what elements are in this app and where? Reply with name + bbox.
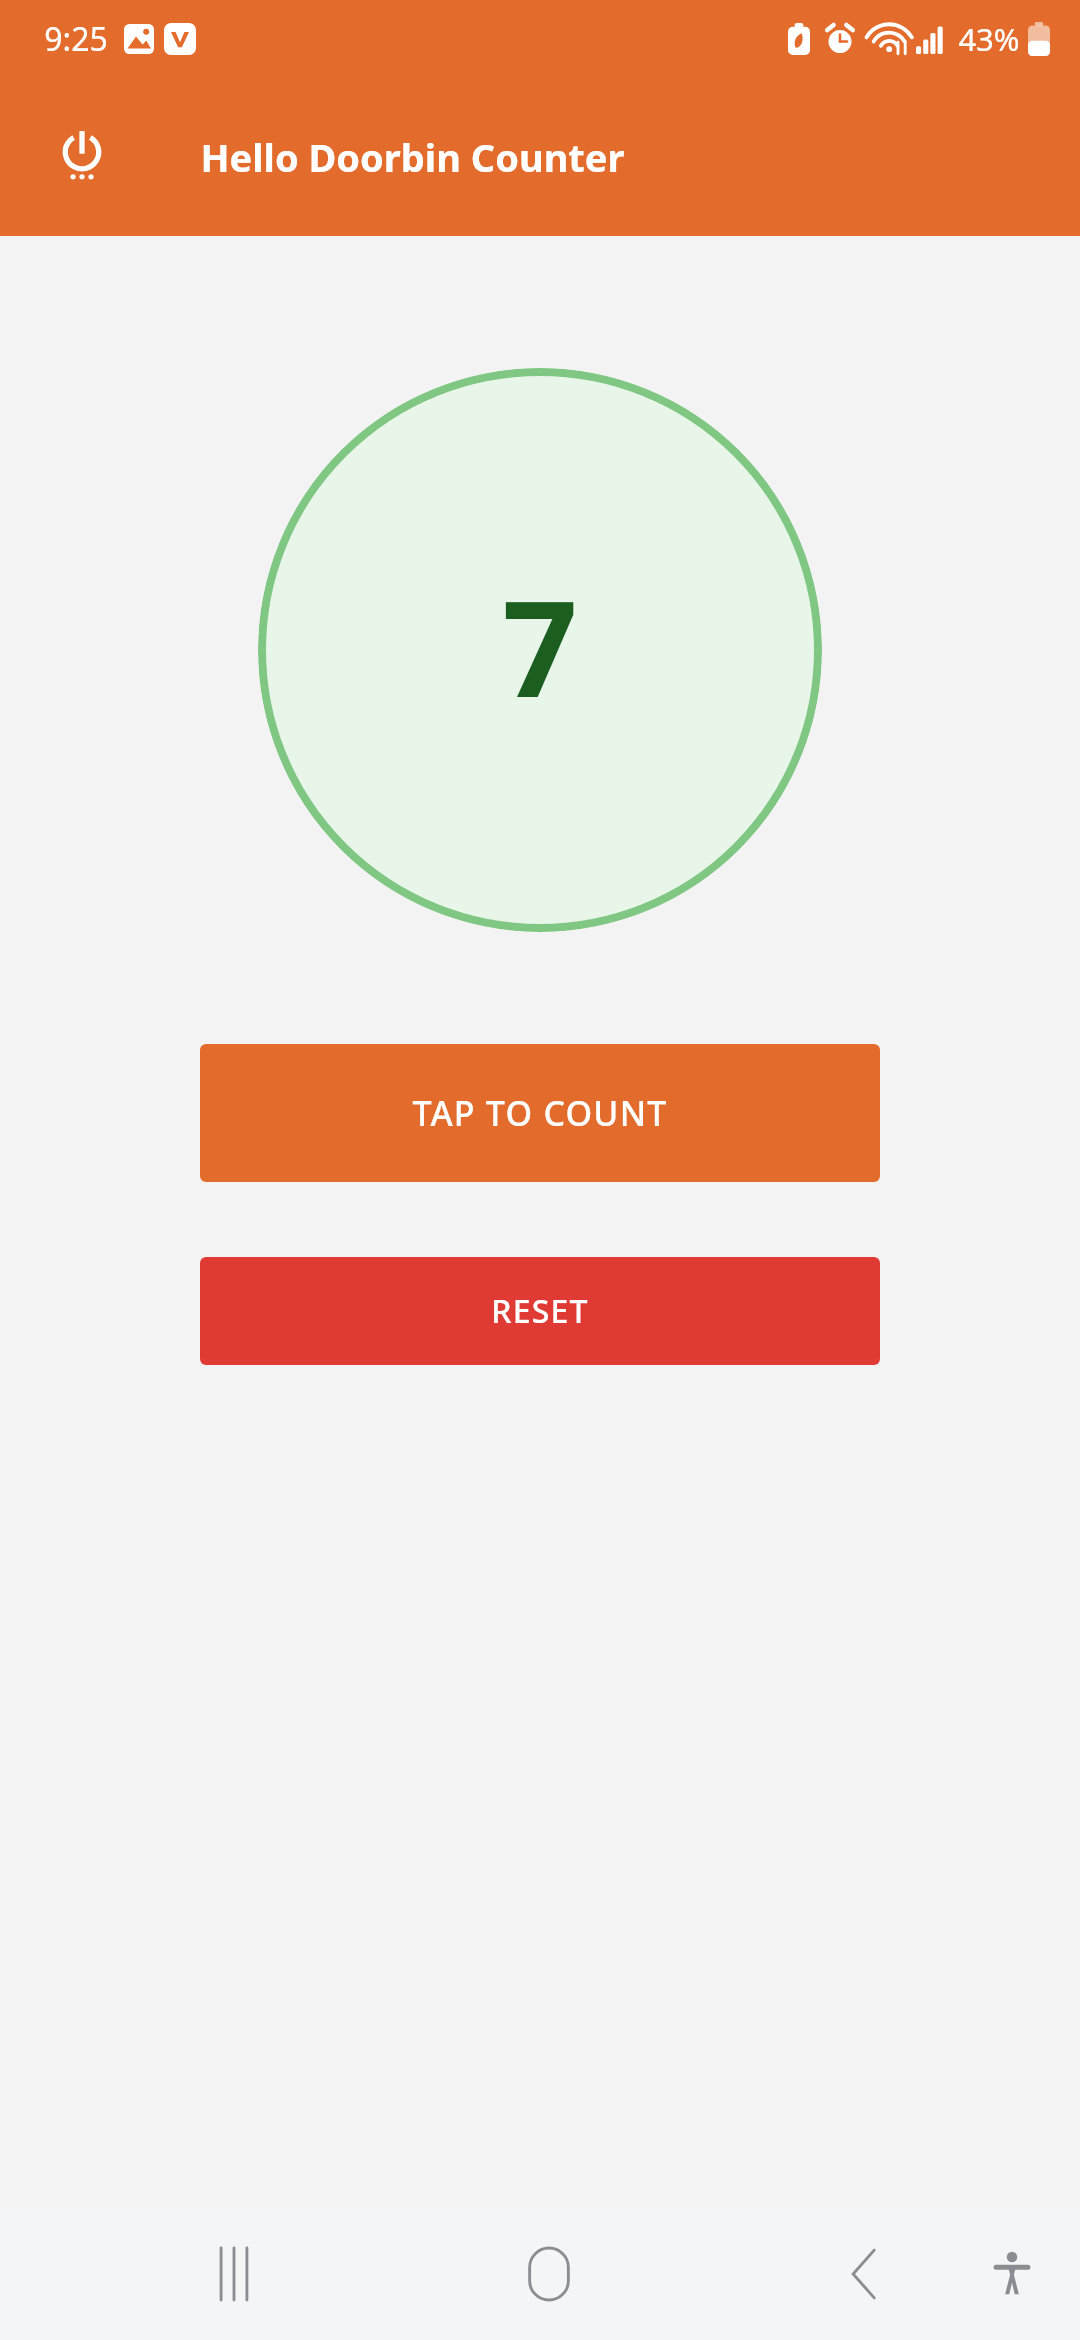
button[interactable]: RESET [200,1257,880,1365]
button[interactable]: Home [501,2226,597,2322]
staticText: 43% [958,18,1020,60]
button[interactable]: TAP TO COUNT [200,1044,880,1182]
button[interactable]: Recents [186,2226,282,2322]
button[interactable]: Power [46,121,118,193]
staticText: 9:25 [44,17,108,61]
staticText: RESET [491,1289,589,1333]
button[interactable]: Back [816,2226,912,2322]
staticText: 7 [502,556,578,736]
staticText: TAP TO COUNT [412,1090,668,1136]
button[interactable]: 7 [258,368,822,932]
button[interactable]: Accessibility [964,2226,1060,2322]
staticText: Hello Doorbin Counter [200,131,625,183]
